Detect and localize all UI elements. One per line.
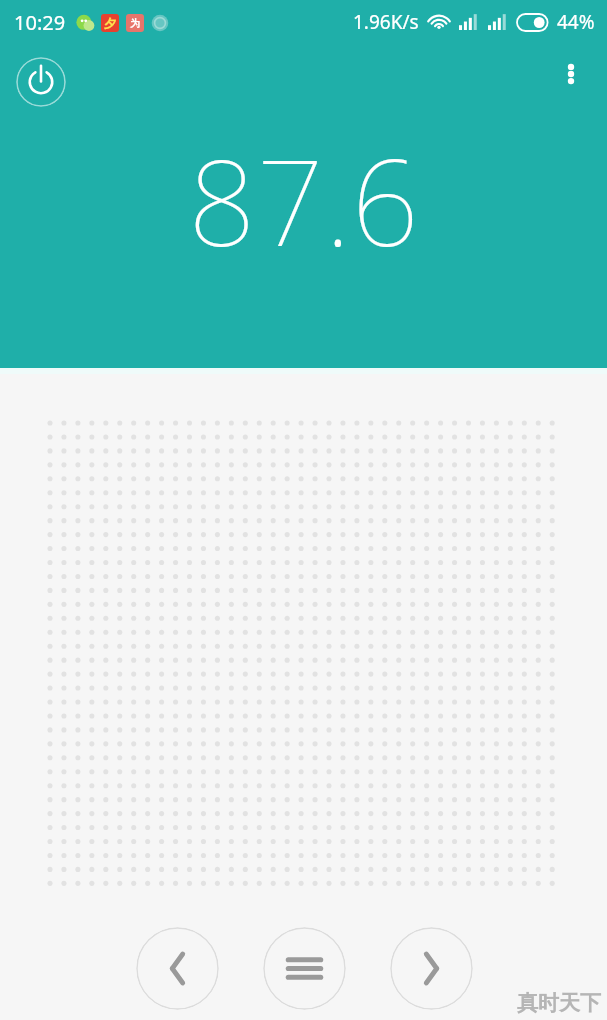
- staticText: 44%: [557, 9, 595, 35]
- staticText: 夕: [104, 16, 116, 31]
- staticText: 10:29: [14, 9, 66, 36]
- button[interactable]: Next station: [390, 927, 473, 1010]
- button[interactable]: Previous station: [136, 927, 219, 1010]
- staticText: 真时天下: [517, 990, 601, 1016]
- button[interactable]: Power: [16, 57, 66, 107]
- button[interactable]: Station list: [263, 927, 346, 1010]
- staticText: 87.6: [188, 120, 420, 260]
- staticText: 为: [130, 17, 140, 30]
- button[interactable]: More options: [547, 50, 595, 98]
- staticText: 1.96K/s: [353, 9, 419, 35]
